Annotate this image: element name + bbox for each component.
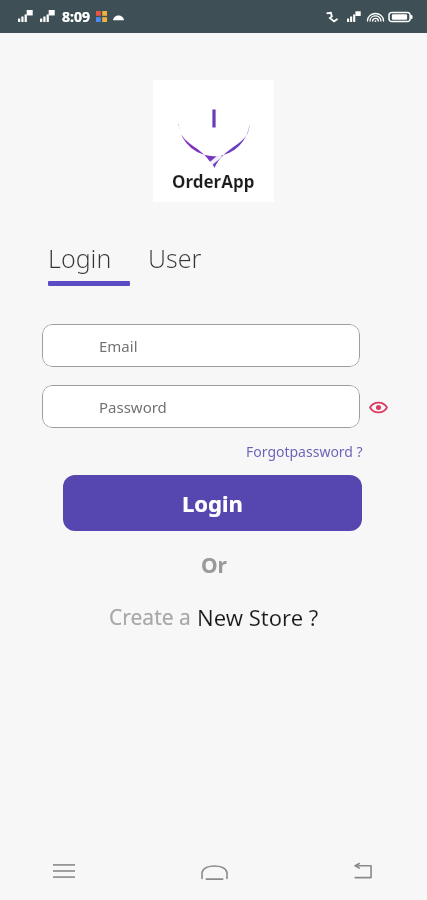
staticText: Or <box>201 551 227 580</box>
staticText: Create a <box>109 603 197 632</box>
button[interactable]: Email <box>42 324 360 367</box>
button[interactable]: Forgotpassword ? <box>246 442 363 461</box>
button[interactable]: Recent apps <box>36 843 92 899</box>
button[interactable]: Password <box>42 385 360 428</box>
staticText: OrderApp <box>172 170 255 193</box>
staticText: Password <box>99 397 167 417</box>
staticText: 8:09 <box>62 7 90 26</box>
button[interactable]: Login <box>48 241 130 286</box>
button[interactable]: Create a <box>0 602 427 632</box>
button[interactable]: Back <box>335 843 391 899</box>
staticText: User <box>148 241 202 275</box>
button[interactable]: Home <box>186 843 242 899</box>
button[interactable]: Login <box>63 475 362 531</box>
staticText: New Store ? <box>197 602 319 632</box>
staticText: Login <box>182 488 243 518</box>
button[interactable]: Show password <box>363 392 393 422</box>
staticText: Forgotpassword ? <box>246 442 363 461</box>
button[interactable]: User <box>148 241 202 275</box>
staticText: Login <box>48 241 112 275</box>
staticText: Email <box>99 336 138 356</box>
